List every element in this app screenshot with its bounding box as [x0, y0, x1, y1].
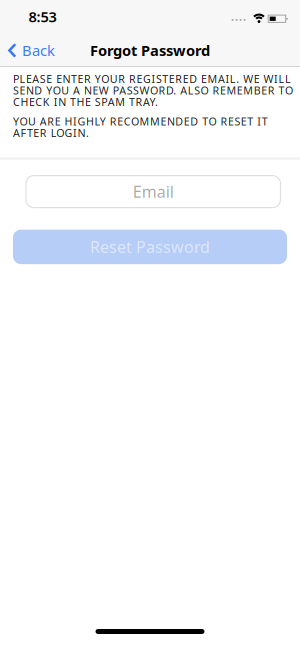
staticText: SEND YOU A NEW PASSWORD. ALSO REMEMBER T… — [13, 83, 293, 97]
button[interactable]: Back — [0, 40, 55, 60]
staticText: PLEASE ENTER YOUR REGISTERED EMAIL. WE W… — [13, 72, 291, 86]
button[interactable]: Reset Password — [0, 230, 300, 264]
staticText: YOU ARE HIGHLY RECOMMENDED TO RESET IT — [13, 114, 268, 128]
staticText: CHECK IN THE SPAM TRAY. — [13, 95, 158, 109]
staticText: Back — [22, 40, 55, 60]
staticText: Reset Password — [90, 236, 210, 257]
button[interactable]: Email — [0, 176, 300, 208]
staticText: AFTER LOGIN. — [13, 126, 89, 140]
staticText: Email — [133, 181, 174, 202]
staticText: 8:53 — [28, 7, 56, 26]
staticText: Forgot Password — [90, 40, 210, 60]
